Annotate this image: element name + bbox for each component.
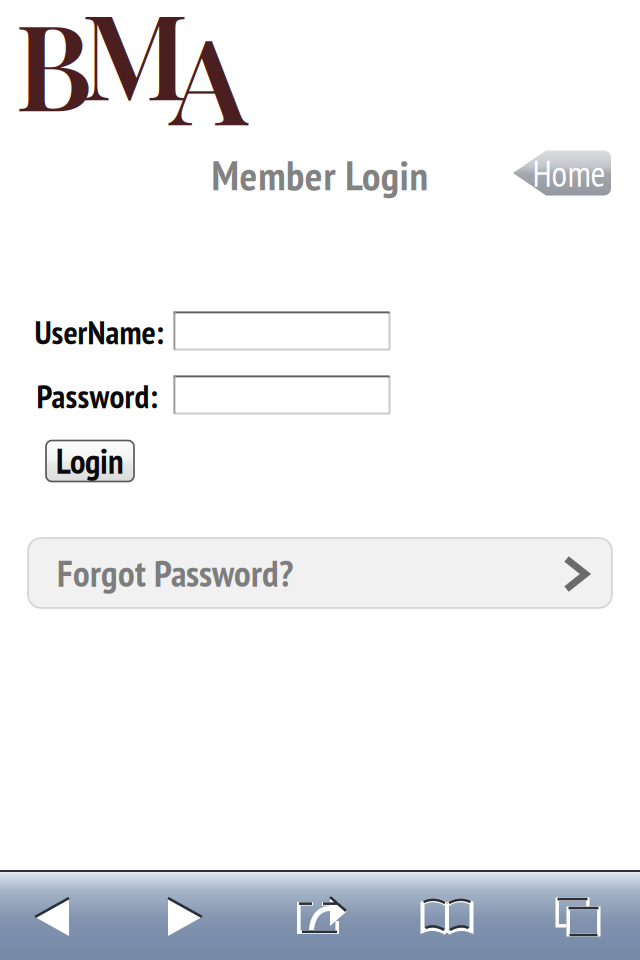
- staticText: A: [170, 0, 248, 155]
- staticText: Password:: [36, 374, 157, 417]
- button[interactable]: Text field: [173, 311, 390, 350]
- button[interactable]: Home: [513, 150, 611, 195]
- staticText: B: [15, 0, 93, 141]
- staticText: M: [81, 0, 189, 130]
- staticText: UserName:: [34, 310, 163, 353]
- button[interactable]: Forgot Password?: [28, 538, 612, 608]
- staticText: Member Login: [212, 148, 428, 202]
- staticText: Forgot Password?: [57, 549, 293, 597]
- button[interactable]: Bookmarks: [421, 897, 472, 935]
- button[interactable]: Share: [297, 894, 347, 938]
- button[interactable]: Forward: [168, 898, 202, 936]
- button[interactable]: Text field: [173, 375, 390, 414]
- button[interactable]: Back: [35, 898, 69, 936]
- staticText: Login: [56, 439, 124, 483]
- staticText: Home: [532, 150, 605, 197]
- button[interactable]: Tabs: [555, 897, 600, 936]
- button[interactable]: Login: [46, 440, 134, 481]
